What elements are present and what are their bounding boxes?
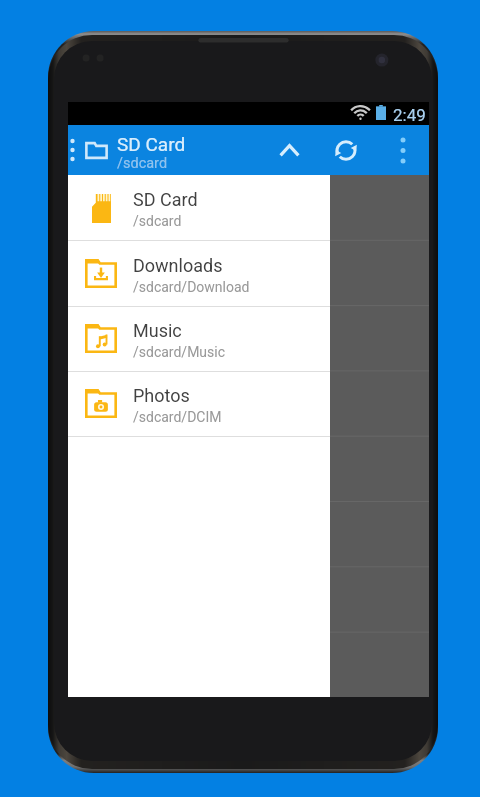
staticText: Photos xyxy=(133,385,190,406)
staticText: SD Card xyxy=(133,189,198,210)
staticText: Downloads xyxy=(133,255,223,276)
button[interactable]: Collapse xyxy=(265,125,313,175)
button[interactable]: SD Card xyxy=(68,175,330,240)
staticText: /sdcard xyxy=(117,155,168,172)
button[interactable]: Downloads xyxy=(68,241,330,306)
button[interactable]: Photos xyxy=(68,372,330,436)
button[interactable]: More options xyxy=(381,125,425,175)
button[interactable]: Music xyxy=(68,307,330,371)
staticText: Music xyxy=(133,320,182,341)
staticText: SD Card xyxy=(117,133,186,155)
button[interactable]: Refresh xyxy=(322,125,370,175)
staticText: /sdcard/Music xyxy=(133,344,226,360)
staticText: /sdcard/Download xyxy=(133,279,250,295)
other: Open drawer xyxy=(68,125,78,175)
staticText: /sdcard/DCIM xyxy=(133,409,222,425)
staticText: 2:49 xyxy=(393,105,426,125)
staticText: /sdcard xyxy=(133,213,182,229)
